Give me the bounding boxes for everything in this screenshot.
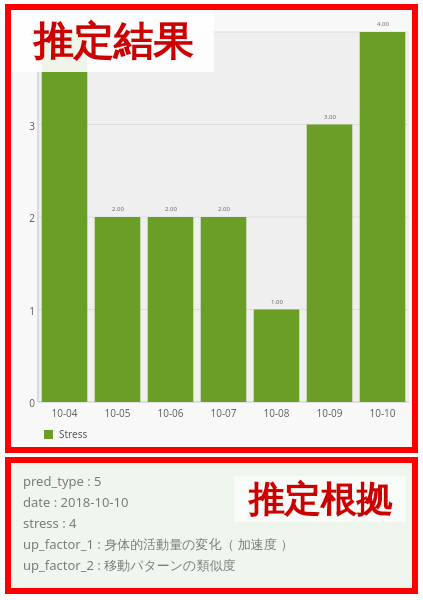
staticText: 10-05 <box>104 406 131 420</box>
staticText: 10-10 <box>369 406 396 420</box>
staticText: 推定根拠 <box>248 477 392 522</box>
staticText: 10-04 <box>51 406 78 420</box>
staticText: 10-07 <box>210 406 237 420</box>
staticText: up_factor_1 : 身体的活動量の変化（ 加速度 ） <box>23 535 294 553</box>
staticText: up_factor_2 : 移動パターンの類似度 <box>23 556 236 574</box>
staticText: 4 <box>29 26 35 40</box>
staticText: 2 <box>29 211 35 225</box>
button[interactable]: 0 <box>11 10 412 447</box>
staticText: pred_type : 5 <box>23 472 102 490</box>
staticText: 10-09 <box>316 406 343 420</box>
staticText: 10-06 <box>157 406 184 420</box>
staticText: 2.00 <box>218 205 230 213</box>
staticText: 推定結果 <box>33 16 193 66</box>
staticText: 4.00 <box>59 20 71 28</box>
staticText: 3.00 <box>324 113 336 121</box>
staticText: date : 2018-10-10 <box>23 493 129 511</box>
staticText: 10-08 <box>263 406 290 420</box>
staticText: Stress <box>59 427 88 441</box>
staticText: 2.00 <box>165 205 177 213</box>
button[interactable]: Stress <box>44 427 88 441</box>
staticText: 1.00 <box>271 298 283 306</box>
staticText: 2.00 <box>112 205 124 213</box>
staticText: 4.00 <box>377 20 389 28</box>
staticText: 3 <box>29 119 35 133</box>
button[interactable]: pred_type : 5 <box>11 463 412 588</box>
staticText: 1 <box>29 304 35 318</box>
staticText: 0 <box>29 396 35 410</box>
staticText: stress : 4 <box>23 514 77 532</box>
